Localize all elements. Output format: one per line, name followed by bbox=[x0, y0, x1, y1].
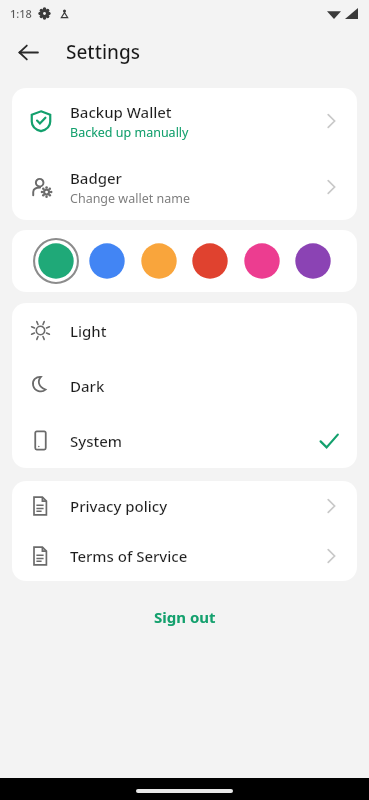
button[interactable]: Privacy policy bbox=[12, 481, 357, 531]
staticText: System bbox=[70, 431, 123, 451]
button[interactable]: Blue theme bbox=[84, 238, 130, 284]
staticText: Settings bbox=[66, 39, 140, 65]
button[interactable]: Pink theme bbox=[239, 238, 285, 284]
button[interactable]: Badger bbox=[12, 154, 357, 220]
staticText: Backup Wallet bbox=[70, 102, 172, 122]
staticText: Sign out bbox=[154, 607, 216, 627]
button[interactable]: Orange theme bbox=[136, 238, 182, 284]
button[interactable]: Terms of Service bbox=[12, 531, 357, 581]
staticText: Badger bbox=[70, 168, 122, 188]
button[interactable]: Sign out bbox=[134, 601, 236, 633]
staticText: 1:18 bbox=[10, 6, 32, 21]
button[interactable]: Dark bbox=[12, 358, 357, 413]
button[interactable]: Green theme bbox=[33, 238, 79, 284]
button[interactable]: Red theme bbox=[187, 238, 233, 284]
staticText: Dark bbox=[70, 376, 105, 396]
button[interactable]: Backup Wallet bbox=[12, 88, 357, 154]
staticText: Terms of Service bbox=[70, 546, 188, 566]
button[interactable]: Home bbox=[136, 789, 233, 793]
button[interactable]: Back bbox=[8, 32, 48, 72]
staticText: Privacy policy bbox=[70, 496, 168, 516]
button[interactable]: Purple theme bbox=[290, 238, 336, 284]
staticText: Light bbox=[70, 321, 107, 341]
button[interactable]: System bbox=[12, 413, 357, 468]
button[interactable]: Light bbox=[12, 303, 357, 358]
staticText: Backed up manually bbox=[70, 124, 189, 141]
staticText: Change wallet name bbox=[70, 190, 190, 207]
